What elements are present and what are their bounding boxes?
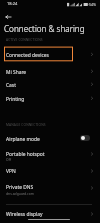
staticText: Wireless display — [6, 211, 43, 218]
staticText: Mi Share — [6, 69, 27, 76]
staticText: 54% — [89, 2, 97, 7]
button[interactable]: Cast — [0, 77, 100, 91]
staticText: VPN — [6, 168, 16, 175]
button[interactable]: Mi Share — [0, 64, 100, 78]
staticText: Connection & sharing — [4, 23, 85, 34]
button[interactable]: VPN — [0, 164, 100, 180]
staticText: Cast — [6, 82, 16, 89]
button[interactable]: Private DNS — [0, 180, 100, 200]
button[interactable]: Back — [3, 12, 14, 22]
staticText: ACTIVE CONNECTIONS — [6, 38, 43, 42]
button[interactable]: Connected devices — [0, 45, 100, 62]
staticText: Off — [6, 157, 11, 162]
staticText: Airplane mode — [6, 136, 40, 143]
staticText: 18:24 — [7, 1, 18, 6]
staticText: Connected devices — [6, 52, 49, 59]
button[interactable]: Airplane mode — [0, 131, 100, 146]
staticText: Printing — [6, 96, 25, 103]
button[interactable]: Portable hotspot — [0, 146, 100, 165]
staticText: Portable hotspot — [6, 151, 45, 158]
staticText: MANAGE CONNECTIONS — [6, 123, 46, 127]
button[interactable]: Wireless display — [0, 206, 100, 220]
staticText: Private DNS — [6, 184, 34, 191]
button[interactable]: Printing — [0, 91, 100, 105]
staticText: dns.adguard.com — [6, 191, 34, 196]
